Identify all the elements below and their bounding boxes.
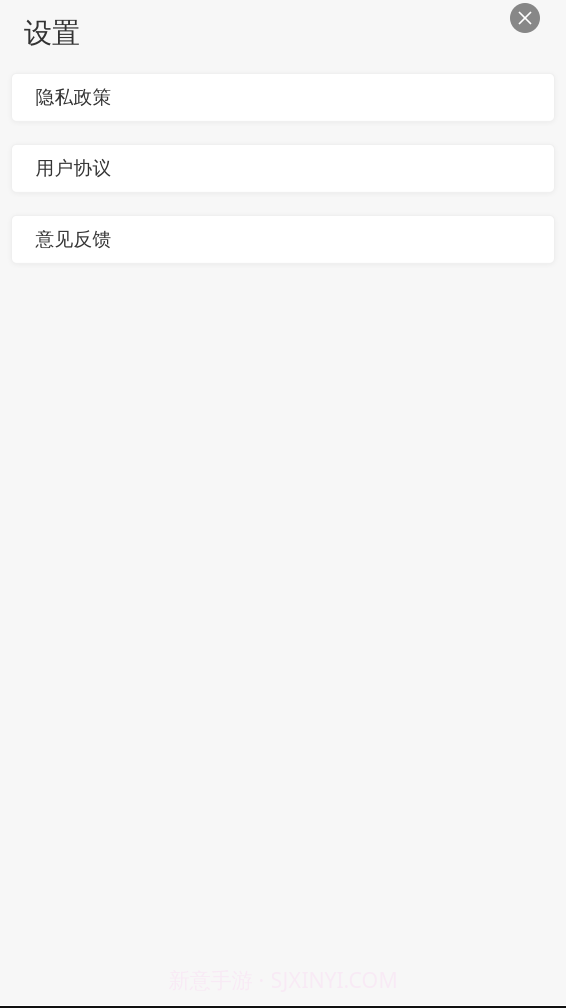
staticText: 用户协议 [35, 157, 111, 180]
staticText: 新意手游 · SJXINYI.COM [168, 966, 397, 994]
staticText: 隐私政策 [35, 86, 111, 109]
button[interactable]: 意见反馈 [11, 215, 554, 263]
button[interactable]: 隐私政策 [11, 73, 554, 121]
staticText: 设置 [24, 16, 80, 50]
button[interactable]: Close [510, 3, 540, 33]
button[interactable]: 用户协议 [11, 144, 554, 192]
staticText: 意见反馈 [35, 228, 111, 251]
